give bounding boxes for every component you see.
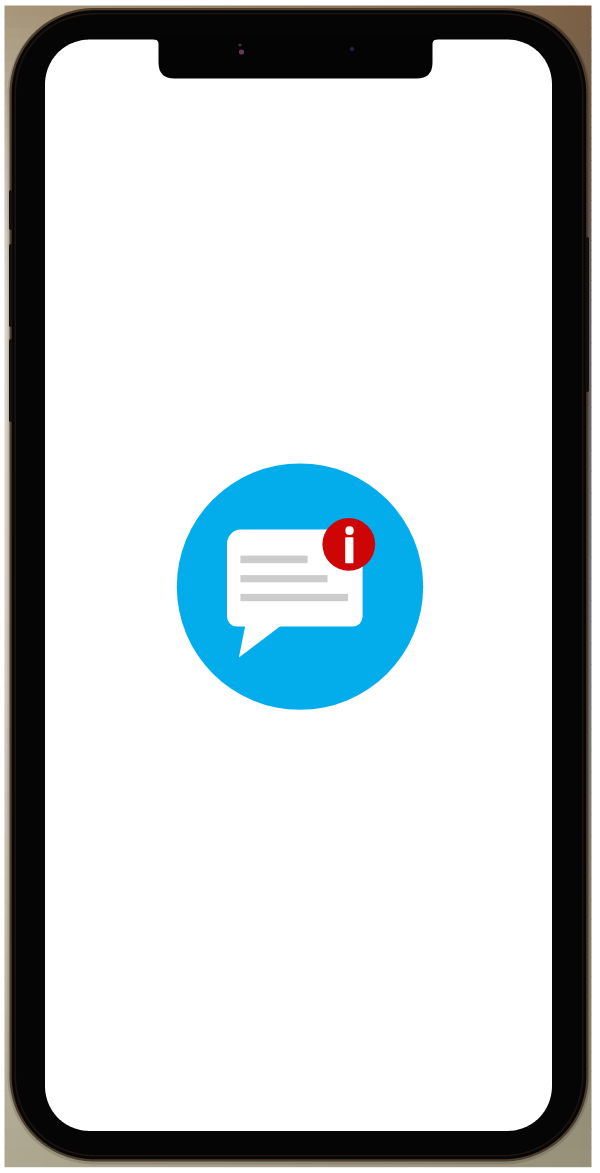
button[interactable]: Open Messages — [177, 463, 423, 709]
